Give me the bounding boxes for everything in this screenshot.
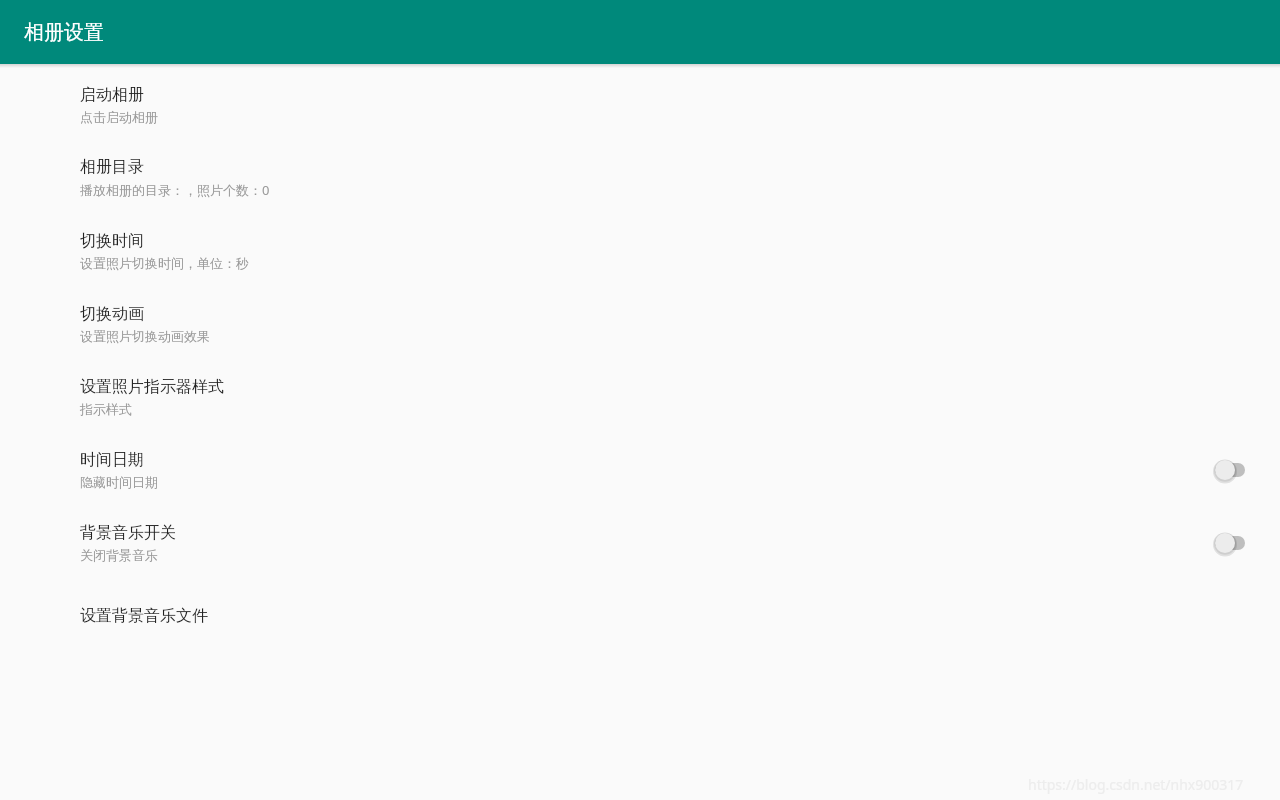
button[interactable]: 设置照片指示器样式 xyxy=(0,360,1280,433)
button[interactable]: 切换动画 xyxy=(0,287,1280,360)
staticText: 背景音乐开关 xyxy=(80,523,176,543)
staticText: 切换时间 xyxy=(80,231,144,251)
staticText: 隐藏时间日期 xyxy=(80,474,158,490)
button[interactable]: Toggle setting xyxy=(1200,450,1254,490)
button[interactable]: 设置背景音乐文件 xyxy=(0,579,1280,652)
staticText: 播放相册的目录：，照片个数：0 xyxy=(80,181,270,199)
staticText: 设置照片指示器样式 xyxy=(80,377,224,397)
staticText: 时间日期 xyxy=(80,450,144,470)
staticText: https://blog.csdn.net/nhx900317 xyxy=(1028,775,1244,794)
staticText: 相册目录 xyxy=(80,157,144,177)
staticText: 设置照片切换动画效果 xyxy=(80,328,210,344)
staticText: 相册设置 xyxy=(24,20,104,45)
button[interactable]: 切换时间 xyxy=(0,214,1280,287)
staticText: 启动相册 xyxy=(80,85,144,105)
staticText: 设置照片切换时间，单位：秒 xyxy=(80,255,249,271)
button[interactable]: 时间日期 xyxy=(0,433,1280,506)
button[interactable]: 背景音乐开关 xyxy=(0,506,1280,579)
staticText: 切换动画 xyxy=(80,304,144,324)
staticText: 关闭背景音乐 xyxy=(80,547,158,563)
staticText: 点击启动相册 xyxy=(80,109,158,125)
button[interactable]: Toggle setting xyxy=(1200,523,1254,563)
button[interactable]: 启动相册 xyxy=(0,68,1280,141)
staticText: 指示样式 xyxy=(80,401,132,417)
button[interactable]: 相册目录 xyxy=(0,141,1280,214)
staticText: 设置背景音乐文件 xyxy=(80,606,208,626)
